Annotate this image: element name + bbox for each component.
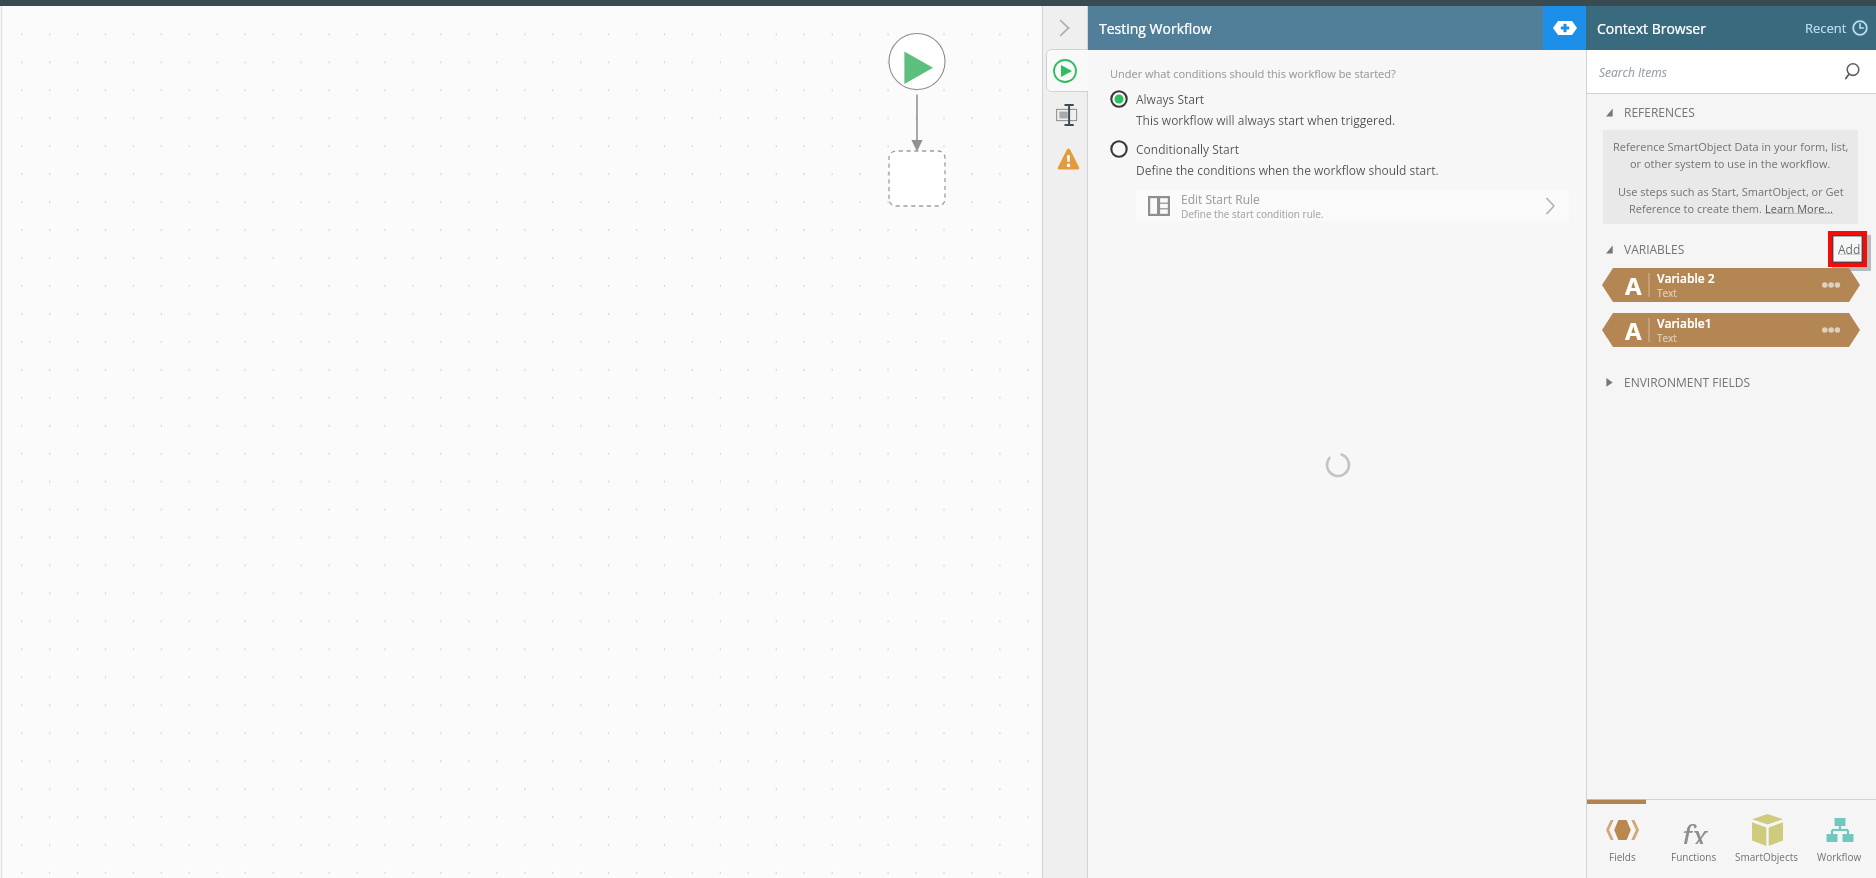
button[interactable]: Add	[1828, 231, 1867, 267]
staticText: VARIABLES	[1624, 241, 1685, 257]
button[interactable]: Recent	[1805, 6, 1868, 50]
staticText: Add	[1838, 241, 1861, 257]
staticText: Testing Workflow	[1099, 19, 1212, 38]
button[interactable]: fx	[1658, 804, 1730, 878]
staticText: A	[1625, 269, 1642, 302]
button[interactable]: Warnings	[1042, 138, 1088, 180]
staticText: SmartObjects	[1735, 850, 1799, 864]
staticText: Context Browser	[1597, 19, 1706, 38]
button[interactable]: Workflow	[1803, 804, 1876, 878]
staticText: Always Start	[1136, 91, 1205, 107]
staticText: Reference SmartObject Data in your form,…	[1613, 139, 1849, 154]
staticText: REFERENCES	[1624, 104, 1695, 120]
staticText: Fields	[1609, 850, 1636, 864]
staticText: This workflow will always start when tri…	[1136, 112, 1396, 128]
staticText: Text	[1657, 331, 1677, 345]
button[interactable]: Start step	[1042, 49, 1088, 92]
button[interactable]: ENVIRONMENT FIELDS	[1606, 371, 1750, 393]
button[interactable]: Conditionally Start	[1110, 138, 1239, 160]
button[interactable]: SmartObjects	[1730, 804, 1803, 878]
staticText: fx	[1682, 816, 1708, 844]
button[interactable]: REFERENCES	[1606, 101, 1695, 123]
staticText: Reference to create them.	[1629, 201, 1765, 216]
staticText: ENVIRONMENT FIELDS	[1624, 374, 1750, 390]
staticText: Define the conditions when the workflow …	[1136, 162, 1439, 178]
staticText: or other system to use in the workflow.	[1630, 156, 1831, 171]
button[interactable]: Edit Start Rule	[1136, 190, 1569, 221]
staticText: A	[1625, 314, 1642, 347]
staticText: Conditionally Start	[1136, 141, 1239, 157]
staticText: Edit Start Rule	[1181, 191, 1260, 207]
button[interactable]: Expand panel	[1042, 6, 1088, 49]
button[interactable]: VARIABLES	[1606, 238, 1685, 260]
staticText: Functions	[1671, 850, 1717, 864]
button[interactable]: A	[1602, 313, 1860, 347]
button[interactable]: Add step	[1543, 6, 1586, 50]
button[interactable]: A	[1602, 268, 1860, 302]
button[interactable]: More options	[1818, 273, 1844, 297]
staticText: Variable1	[1657, 315, 1712, 331]
staticText: Recent	[1805, 19, 1847, 37]
staticText: Define the start condition rule.	[1181, 207, 1324, 221]
staticText: Search Items	[1599, 64, 1667, 80]
button[interactable]: Always Start	[1110, 88, 1205, 110]
staticText: Variable 2	[1657, 270, 1715, 286]
staticText: Workflow	[1817, 850, 1862, 864]
button[interactable]: More options	[1818, 318, 1844, 342]
button[interactable]: Fields	[1586, 804, 1658, 878]
button[interactable]: Learn More...	[1765, 201, 1833, 216]
button[interactable]: Search	[1840, 58, 1868, 86]
staticText: Text	[1657, 286, 1677, 300]
staticText: Use steps such as Start, SmartObject, or…	[1618, 184, 1844, 199]
button[interactable]: Form field	[1042, 94, 1088, 136]
staticText: Under what conditions should this workfl…	[1110, 66, 1396, 81]
